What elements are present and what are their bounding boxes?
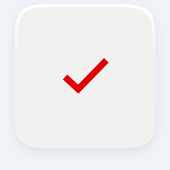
- button[interactable]: Completed: [0, 0, 170, 161]
